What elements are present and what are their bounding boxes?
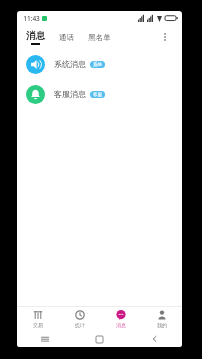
button[interactable]: Back [127,331,182,347]
button[interactable]: 交易 [17,307,59,331]
staticText: 系统 [93,62,102,68]
staticText: 黑名单 [88,33,111,42]
staticText: 11:43 [23,14,40,23]
button[interactable]: 消息 [25,30,46,45]
button[interactable]: 客服消息 [17,79,182,109]
staticText: 我的 [157,322,167,328]
staticText: 系统消息 [54,59,86,69]
staticText: 交易 [33,322,43,328]
button[interactable]: 通话 [58,33,75,42]
button[interactable]: 统计 [59,307,100,331]
staticText: 统计 [75,322,85,328]
staticText: 客服消息 [54,89,86,99]
staticText: 消息 [116,322,126,328]
button[interactable]: Recents [17,331,72,347]
staticText: 通话 [59,33,74,42]
button[interactable]: 我的 [141,307,182,331]
button[interactable]: More options [156,28,174,46]
staticText: 客服 [93,92,102,98]
button[interactable]: Home [72,331,127,347]
staticText: 消息 [26,30,45,42]
button[interactable]: 系统消息 [17,49,182,79]
button[interactable]: 消息 [100,307,141,331]
button[interactable]: 黑名单 [87,33,112,42]
